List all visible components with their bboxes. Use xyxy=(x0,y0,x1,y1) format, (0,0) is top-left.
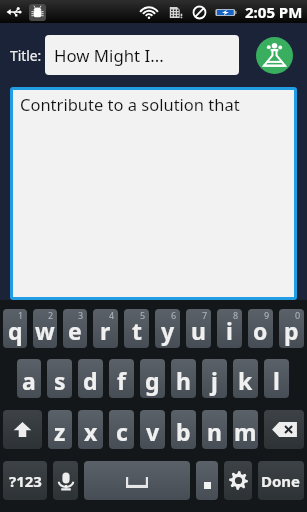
staticText: g xyxy=(145,365,160,396)
staticText: 4 xyxy=(109,309,115,321)
staticText: c xyxy=(116,416,128,447)
button[interactable]: Done xyxy=(258,461,304,500)
staticText: 2:05 PM xyxy=(245,2,303,22)
button[interactable]: Delete xyxy=(264,410,304,449)
staticText: d xyxy=(83,365,98,396)
button[interactable]: w xyxy=(33,309,57,348)
staticText: p xyxy=(284,315,299,346)
staticText: n xyxy=(207,416,222,447)
button[interactable]: Contribute to a solution that xyxy=(13,90,294,297)
staticText: 2 xyxy=(48,309,54,321)
staticText: Contribute to a solution that xyxy=(20,93,240,115)
button[interactable]: Period xyxy=(196,461,218,500)
button[interactable]: u xyxy=(186,309,211,348)
button[interactable]: g xyxy=(140,359,165,398)
staticText: j xyxy=(211,365,218,396)
button[interactable]: q xyxy=(3,309,27,348)
staticText: How Might I... xyxy=(54,44,164,67)
staticText: l xyxy=(273,365,280,396)
button[interactable]: r xyxy=(93,309,118,348)
button[interactable]: j xyxy=(202,359,227,398)
staticText: t xyxy=(132,315,142,346)
button[interactable]: a xyxy=(17,359,41,398)
staticText: m xyxy=(234,416,257,447)
button[interactable]: t xyxy=(124,309,149,348)
staticText: o xyxy=(253,315,268,346)
staticText: ?123 xyxy=(9,471,42,491)
staticText: r xyxy=(100,315,111,346)
staticText: y xyxy=(161,315,175,346)
button[interactable]: c xyxy=(109,410,134,449)
staticText: 5 xyxy=(140,309,146,321)
button[interactable]: n xyxy=(202,410,227,449)
button[interactable]: Experiment xyxy=(256,37,293,74)
button[interactable]: b xyxy=(171,410,196,449)
staticText: a xyxy=(22,365,36,396)
button[interactable]: p xyxy=(279,309,304,348)
button[interactable]: Space xyxy=(84,461,190,500)
staticText: 3 xyxy=(78,309,84,321)
staticText: 7 xyxy=(202,309,208,321)
button[interactable]: How Might I... xyxy=(45,35,239,75)
staticText: 8 xyxy=(233,309,239,321)
staticText: v xyxy=(146,416,160,447)
button[interactable]: ?123 xyxy=(3,461,47,500)
staticText: 0 xyxy=(295,309,301,321)
button[interactable]: y xyxy=(155,309,180,348)
staticText: k xyxy=(238,365,253,396)
staticText: w xyxy=(35,315,55,346)
button[interactable]: Voice input xyxy=(53,461,78,500)
staticText: x xyxy=(84,416,98,447)
staticText: 9 xyxy=(264,309,270,321)
button[interactable]: x xyxy=(78,410,103,449)
button[interactable]: z xyxy=(48,410,72,449)
button[interactable]: s xyxy=(47,359,72,398)
button[interactable]: e xyxy=(63,309,87,348)
button[interactable]: h xyxy=(171,359,196,398)
button[interactable]: l xyxy=(264,359,289,398)
staticText: Done xyxy=(261,471,301,491)
staticText: s xyxy=(54,365,66,396)
staticText: 1 xyxy=(18,309,24,321)
staticText: e xyxy=(68,315,82,346)
staticText: i xyxy=(226,315,233,346)
staticText: b xyxy=(176,416,191,447)
button[interactable]: v xyxy=(140,410,165,449)
button[interactable]: Settings xyxy=(224,461,252,500)
staticText: 6 xyxy=(171,309,177,321)
staticText: f xyxy=(117,365,126,396)
button[interactable]: m xyxy=(233,410,258,449)
button[interactable]: o xyxy=(248,309,273,348)
button[interactable]: Shift xyxy=(3,410,42,449)
staticText: Title: xyxy=(10,46,42,65)
button[interactable]: k xyxy=(233,359,258,398)
staticText: z xyxy=(54,416,66,447)
staticText: u xyxy=(191,315,206,346)
staticText: h xyxy=(176,365,191,396)
staticText: q xyxy=(8,315,23,346)
button[interactable]: f xyxy=(109,359,134,398)
button[interactable]: d xyxy=(78,359,103,398)
button[interactable]: i xyxy=(217,309,242,348)
